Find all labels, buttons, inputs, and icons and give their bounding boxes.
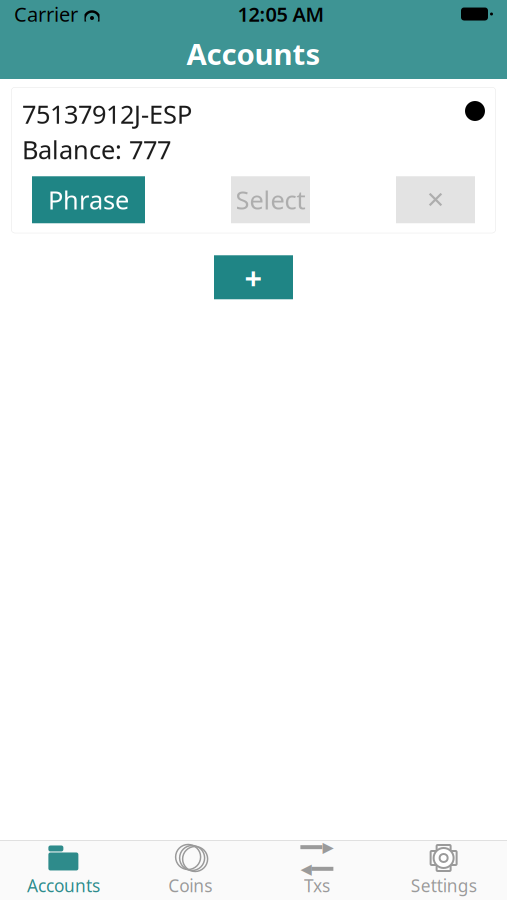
staticText: Accounts [186, 34, 320, 73]
button[interactable]: ▶ [253, 841, 380, 899]
button[interactable]: Phrase [32, 176, 145, 223]
staticText: Settings [411, 874, 477, 897]
staticText: Accounts [27, 874, 100, 897]
staticText: ◀ [300, 860, 311, 877]
staticText: 75137912J-ESP [22, 97, 192, 131]
staticText: Phrase [48, 183, 129, 217]
staticText: Txs [304, 874, 330, 897]
staticText: Balance: 777 [22, 133, 171, 166]
staticText: ▶ [322, 839, 333, 855]
staticText: ✕ [426, 187, 445, 213]
staticText: Carrier [14, 1, 78, 27]
button[interactable]: Accounts [0, 841, 127, 899]
staticText: Select [235, 183, 305, 217]
staticText: + [244, 257, 262, 298]
button[interactable]: Coins [127, 841, 254, 899]
staticText: Coins [168, 874, 212, 897]
staticText: 12:05 AM [237, 1, 324, 27]
button[interactable]: Settings [380, 841, 507, 899]
button[interactable]: Add account [214, 255, 293, 299]
button[interactable]: Remove account [396, 176, 475, 223]
button[interactable]: Select [231, 176, 310, 223]
